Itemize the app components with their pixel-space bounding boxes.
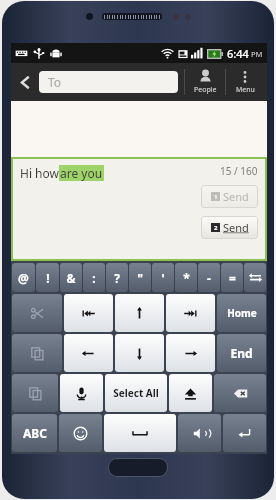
staticText: ' [161, 270, 165, 286]
button[interactable]: Select All [105, 374, 167, 412]
button[interactable]: Copy [12, 334, 62, 372]
button[interactable]: @ [12, 263, 35, 292]
staticText: Send [223, 220, 249, 235]
staticText: Hi how [20, 165, 59, 181]
button[interactable]: * [175, 263, 197, 292]
button[interactable]: Space [104, 414, 176, 452]
button[interactable]: Down [115, 334, 164, 372]
button[interactable]: Up [115, 294, 164, 332]
staticText: 15 / 160 [220, 164, 258, 178]
button[interactable]: = [221, 263, 243, 292]
staticText: Home [227, 306, 257, 320]
staticText: PM [251, 49, 263, 59]
button[interactable]: People [185, 63, 225, 101]
button[interactable]: Shift [169, 374, 212, 412]
staticText: 2 [214, 224, 218, 232]
button[interactable]: Emoji [59, 414, 102, 452]
staticText: Menu [236, 85, 255, 95]
staticText: ? [114, 270, 120, 286]
staticText: End [230, 345, 253, 361]
button[interactable]: - [198, 263, 220, 292]
staticText: = [229, 270, 236, 286]
button[interactable]: Enter [223, 414, 266, 452]
button[interactable]: ! [36, 263, 59, 292]
staticText: ABC [23, 425, 47, 441]
button[interactable]: To [39, 71, 178, 93]
staticText: People [194, 85, 217, 95]
staticText: are you [60, 165, 103, 181]
button[interactable]: & [60, 263, 82, 292]
button[interactable]: Next [166, 294, 215, 332]
button[interactable]: Previous [64, 294, 113, 332]
button[interactable]: " [129, 263, 151, 292]
button[interactable]: : [83, 263, 105, 292]
staticText: - [207, 270, 211, 286]
staticText: To [48, 74, 62, 90]
button[interactable]: Back [11, 63, 39, 101]
staticText: 6:44 [227, 46, 249, 61]
button[interactable]: 1 [201, 185, 258, 208]
staticText: @ [18, 270, 29, 286]
staticText: ! [46, 270, 50, 286]
button[interactable]: Voice input [60, 374, 103, 412]
button[interactable]: 2 [201, 216, 258, 239]
button[interactable]: Left [64, 334, 113, 372]
staticText: * [183, 270, 190, 286]
staticText: Select All [113, 386, 159, 400]
staticText: & [66, 270, 76, 286]
button[interactable]: Volume [178, 414, 221, 452]
staticText: " [137, 270, 143, 286]
button[interactable]: Switch [244, 263, 266, 292]
button[interactable]: ABC [12, 414, 57, 452]
staticText: 1 [214, 193, 218, 201]
button[interactable]: End [217, 334, 266, 372]
button[interactable]: Delete [214, 374, 266, 412]
button[interactable]: ? [106, 263, 128, 292]
button[interactable]: Paste [12, 374, 58, 412]
staticText: Send [223, 189, 249, 204]
button[interactable]: Cut [12, 294, 62, 332]
button[interactable]: ' [152, 263, 174, 292]
staticText: : [92, 270, 96, 286]
button[interactable]: Home [217, 294, 266, 332]
button[interactable]: Menu [226, 63, 264, 101]
button[interactable]: Right [166, 334, 215, 372]
